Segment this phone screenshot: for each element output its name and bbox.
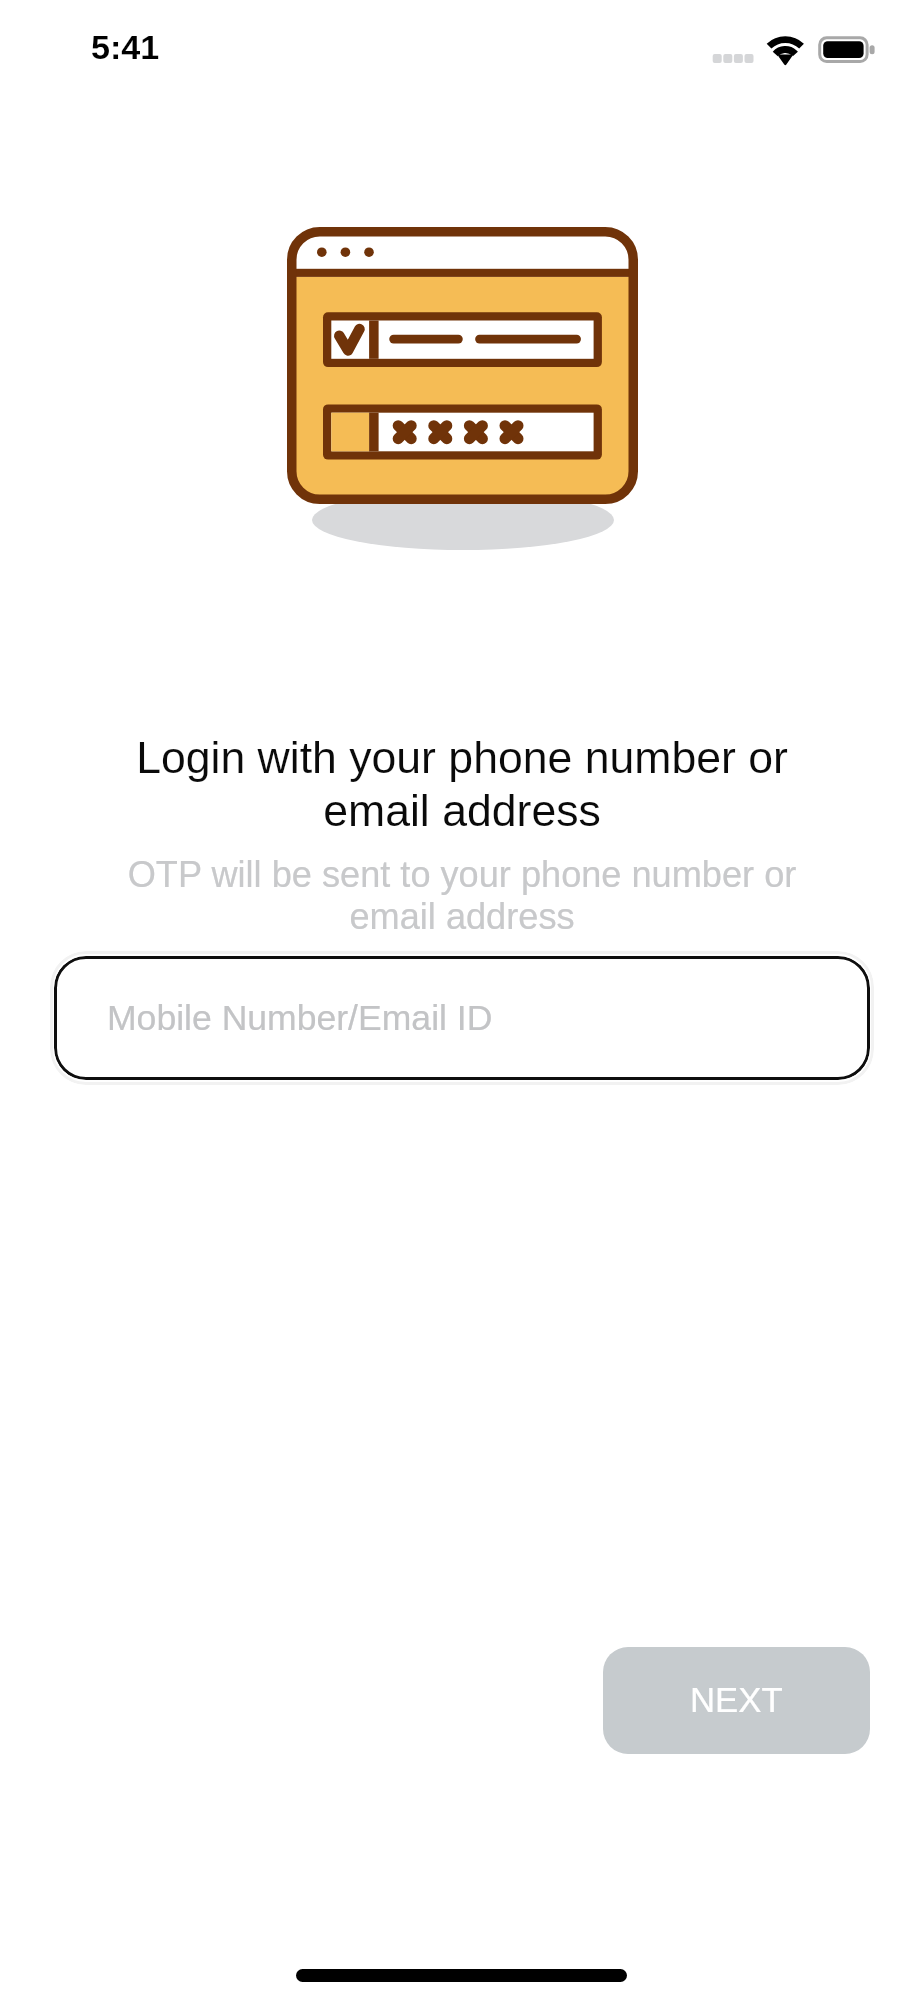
staticText: NEXT — [690, 1681, 783, 1720]
staticText: Mobile Number/Email ID — [107, 998, 493, 1038]
staticText: Login with your phone number or email ad… — [0, 733, 924, 835]
button[interactable]: NEXT — [603, 1647, 870, 1754]
staticText: 5:41 — [91, 28, 160, 66]
other: Cellular signal, Wi-Fi and battery statu… — [700, 25, 890, 75]
staticText: OTP will be sent to your phone number or… — [0, 854, 924, 936]
button[interactable]: Mobile Number/Email ID — [54, 956, 870, 1080]
